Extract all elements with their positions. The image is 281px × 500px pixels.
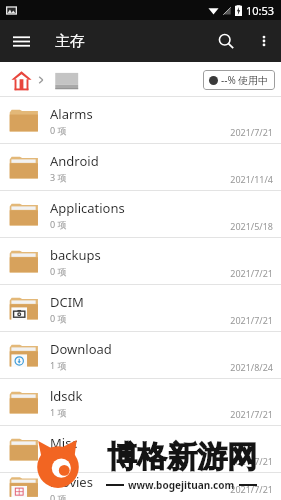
staticText: 2021/8/24 [230, 361, 273, 373]
button[interactable]: More options [247, 24, 281, 58]
staticText: 0 项 [50, 265, 67, 277]
staticText: Android [50, 152, 99, 170]
staticText: Download [50, 340, 112, 358]
button[interactable]: Home [8, 67, 34, 93]
staticText: 0 项 [50, 218, 67, 230]
staticText: ldsdk [50, 387, 83, 405]
staticText: 2021/7/21 [230, 408, 273, 420]
staticText: Applications [50, 199, 125, 217]
button[interactable]: ldsdk [0, 379, 281, 426]
button[interactable]: Search [205, 20, 247, 62]
button[interactable]: DCIM [0, 285, 281, 332]
button[interactable]: Movies [0, 473, 281, 500]
staticText: 2021/7/21 [230, 267, 273, 279]
staticText: 0 项 [50, 312, 67, 324]
staticText: DCIM [50, 293, 84, 311]
staticText: 2021/7/21 [230, 455, 273, 467]
staticText: 2021/5/18 [230, 220, 273, 232]
staticText: 0 项 [50, 124, 67, 136]
staticText: 3 项 [50, 171, 67, 183]
staticText: 1 项 [50, 453, 67, 465]
staticText: 主存 [55, 32, 85, 51]
button[interactable]: Applications [0, 191, 281, 238]
staticText: 2021/7/21 [230, 483, 273, 495]
button[interactable]: Download [0, 332, 281, 379]
button[interactable]: Alarms [0, 97, 281, 144]
staticText: 1 项 [50, 359, 67, 371]
button[interactable]: Open navigation drawer [0, 20, 42, 62]
staticText: 博格新游网 [107, 438, 257, 476]
button[interactable]: backups [0, 238, 281, 285]
button[interactable]: --% 使用中 [203, 70, 275, 90]
staticText: 1 项 [50, 406, 67, 418]
button[interactable]: Misc [0, 426, 281, 473]
staticText: --% 使用中 [221, 73, 269, 87]
staticText: 2021/7/21 [230, 314, 273, 326]
staticText: Movies [50, 473, 93, 491]
staticText: backups [50, 246, 101, 264]
staticText: Alarms [50, 105, 93, 123]
staticText: www.bogejituan.com [128, 478, 235, 492]
staticText: 2021/7/21 [230, 126, 273, 138]
button[interactable]: Internal storage [50, 67, 80, 93]
staticText: 10:53 [246, 3, 275, 18]
staticText: 0 项 [50, 492, 67, 500]
button[interactable]: Android [0, 144, 281, 191]
staticText: 2021/11/4 [230, 173, 273, 185]
staticText: Misc [50, 434, 78, 452]
